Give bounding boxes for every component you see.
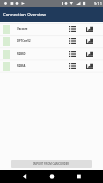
staticText: R2BSD (17, 52, 67, 56)
button[interactable]: Show chart (84, 48, 94, 60)
button[interactable]: Show chart (84, 23, 94, 35)
button[interactable]: R2BSD (0, 48, 103, 60)
button[interactable]: Vaccare (0, 23, 103, 35)
button[interactable]: IMPORT FROM CAMCORDER (11, 160, 92, 168)
staticText: DP1CenV2 (17, 39, 67, 43)
staticText: Connection Overview (3, 11, 46, 17)
button[interactable]: Show list (67, 48, 77, 60)
button[interactable]: DP1CenV2 (0, 35, 103, 47)
button[interactable]: R2BSA (0, 60, 103, 72)
button[interactable]: Show chart (84, 35, 94, 47)
staticText: IMPORT FROM CAMCORDER (33, 162, 70, 166)
staticText: Vaccare (17, 27, 67, 31)
staticText: 9:11 (94, 1, 102, 6)
button[interactable]: Show list (67, 60, 77, 72)
button[interactable]: Show list (67, 35, 77, 47)
staticText: R2BSA (17, 64, 67, 68)
button[interactable]: Show chart (84, 60, 94, 72)
button[interactable]: Show list (67, 23, 77, 35)
